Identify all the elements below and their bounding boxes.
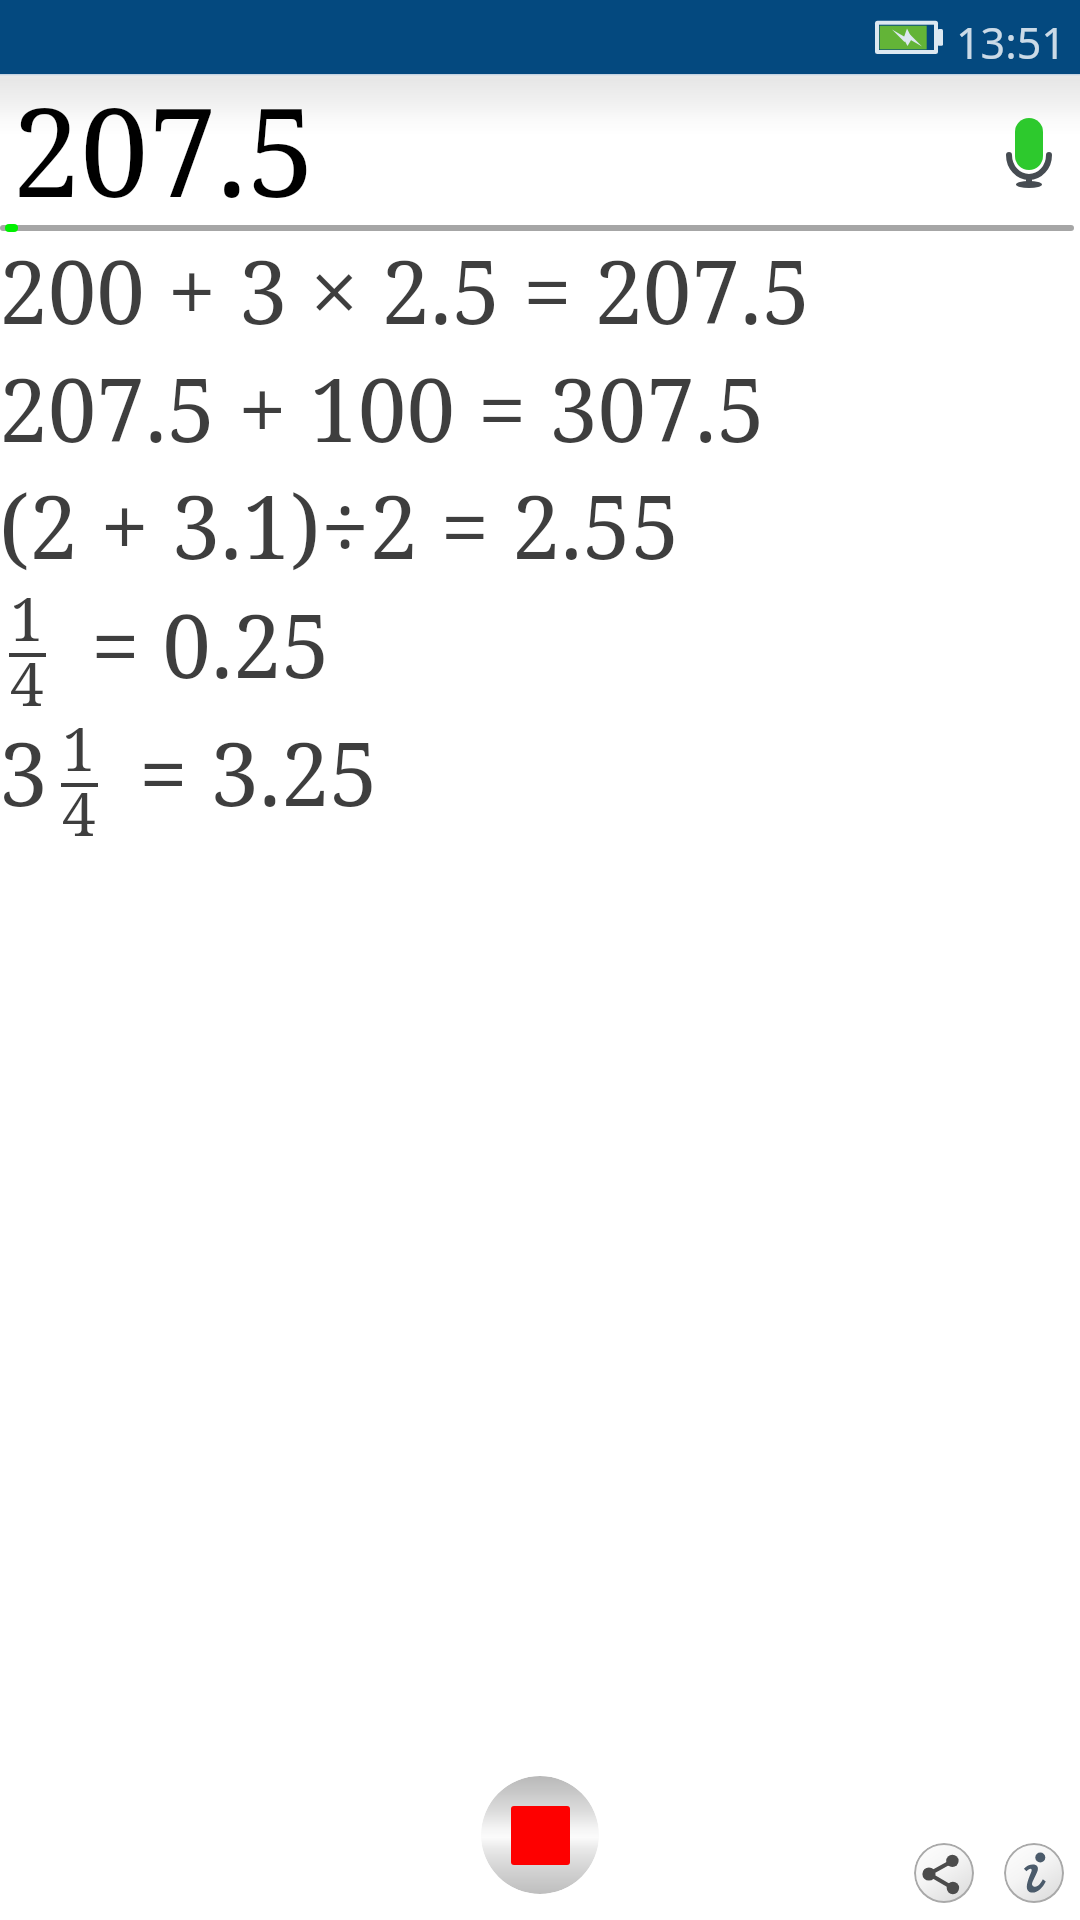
staticText: (2 + 3.1)÷2 = 2.55 xyxy=(0,466,680,576)
staticText: 207.5 xyxy=(12,67,316,220)
button[interactable]: Voice input xyxy=(985,90,1073,182)
staticText: = 3.25 xyxy=(139,713,378,823)
staticText: 13:51 xyxy=(956,13,1066,72)
button[interactable]: 1 xyxy=(0,584,1080,694)
staticText: 4 xyxy=(62,772,96,854)
button[interactable]: 207.5 + 100 = 307.5 xyxy=(0,349,1080,459)
staticText: 4 xyxy=(10,642,44,724)
staticText: 200 + 3 × 2.5 = 207.5 xyxy=(0,231,811,341)
button[interactable]: Info xyxy=(1004,1843,1064,1903)
staticText: 207.5 + 100 = 307.5 xyxy=(0,349,766,459)
staticText: 1 xyxy=(10,577,44,659)
button[interactable]: Share xyxy=(914,1843,974,1903)
button[interactable]: Stop recording xyxy=(481,1776,599,1894)
button[interactable]: 3 xyxy=(0,714,1080,824)
button[interactable]: (2 + 3.1)÷2 = 2.55 xyxy=(0,466,1080,576)
staticText: 3 xyxy=(0,713,48,823)
staticText: 1 xyxy=(62,707,96,789)
button[interactable]: 200 + 3 × 2.5 = 207.5 xyxy=(0,231,1080,341)
staticText: = 0.25 xyxy=(91,585,330,695)
